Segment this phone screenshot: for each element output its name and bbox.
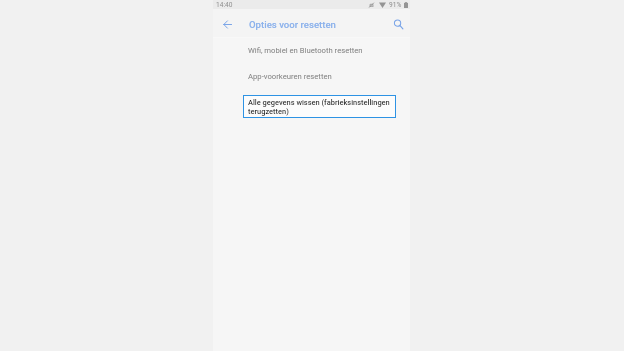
staticText: Alle gegevens wissen (fabrieksinstelling… — [248, 98, 390, 115]
button[interactable]: Back — [218, 15, 236, 33]
staticText: Wifi, mobiel en Bluetooth resetten — [248, 46, 363, 55]
button[interactable]: App-voorkeuren resetten — [213, 63, 410, 89]
button[interactable]: Alle gegevens wissen (fabrieksinstelling… — [243, 95, 396, 118]
staticText: 91% — [389, 1, 402, 9]
staticText: 14:40 — [216, 1, 233, 9]
staticText: Opties voor resetten — [249, 19, 336, 30]
staticText: App-voorkeuren resetten — [248, 72, 332, 81]
button[interactable]: Search — [389, 15, 407, 33]
button[interactable]: Wifi, mobiel en Bluetooth resetten — [213, 37, 410, 63]
